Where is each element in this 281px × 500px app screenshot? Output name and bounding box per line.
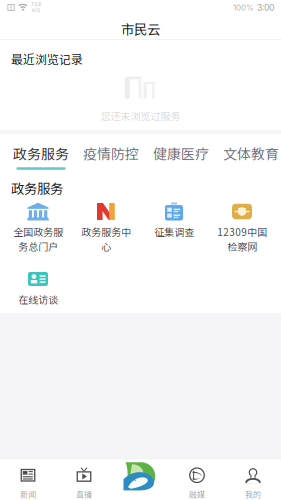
staticText: 政务服务 xyxy=(11,178,63,198)
staticText: K/S xyxy=(32,7,40,13)
button[interactable]: 在线访谈 xyxy=(4,269,72,337)
staticText: 73.8 xyxy=(31,2,41,7)
button[interactable]: 我的 xyxy=(225,459,281,500)
staticText: 政务服务 xyxy=(13,143,69,163)
staticText: 融媒 xyxy=(189,488,205,500)
button[interactable]: 融媒 xyxy=(169,459,225,500)
button[interactable]: 直播 xyxy=(56,459,112,500)
staticText: 3:00 xyxy=(257,2,274,13)
staticText: 新闻 xyxy=(20,488,36,500)
staticText: 您还未浏览过服务 xyxy=(100,108,180,123)
button[interactable]: 政务服务 xyxy=(6,134,76,172)
staticText: 文体教育 xyxy=(223,143,279,163)
button[interactable]: 全国政务服务总门户 xyxy=(4,201,72,269)
staticText: 政务服务中心 xyxy=(81,224,131,253)
staticText: 我的 xyxy=(245,488,261,500)
button[interactable]: 新闻 xyxy=(0,459,56,500)
button[interactable]: 征集调查 xyxy=(140,201,208,269)
button[interactable]: 政务服务中心 xyxy=(72,201,140,269)
button[interactable]: 文体教育 xyxy=(216,134,281,172)
staticText: 最近浏览记录 xyxy=(11,50,83,67)
button[interactable]: 健康医疗 xyxy=(146,134,216,172)
staticText: 12309中国检察网 xyxy=(217,224,267,253)
staticText: 征集调查 xyxy=(154,224,194,239)
button[interactable]: 首页 xyxy=(112,458,169,500)
staticText: 直播 xyxy=(76,488,92,500)
staticText: 健康医疗 xyxy=(153,143,209,163)
button[interactable]: 12309中国检察网 xyxy=(208,201,276,269)
staticText: 在线访谈 xyxy=(18,292,58,306)
staticText: 100% xyxy=(233,3,254,12)
staticText: 市民云 xyxy=(121,19,160,38)
staticText: 疫情防控 xyxy=(83,143,139,163)
button[interactable]: 疫情防控 xyxy=(76,134,146,172)
staticText: 全国政务服务总门户 xyxy=(13,224,63,253)
